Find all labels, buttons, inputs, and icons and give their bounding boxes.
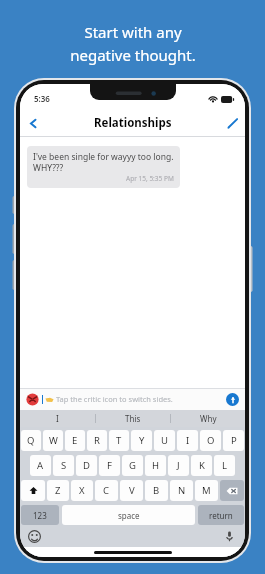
staticText: X xyxy=(79,484,85,497)
staticText: W xyxy=(49,434,58,447)
button[interactable]: C xyxy=(95,480,118,501)
staticText: C xyxy=(103,484,110,497)
button[interactable]: Shift xyxy=(21,480,45,501)
staticText: G xyxy=(129,459,136,472)
staticText: 5:36 xyxy=(34,93,50,104)
button[interactable]: return xyxy=(198,505,244,525)
button[interactable]: U xyxy=(154,430,175,451)
button[interactable]: Emoji xyxy=(28,530,41,543)
button[interactable]: X xyxy=(71,480,93,501)
staticText: F xyxy=(107,459,112,472)
staticText: V xyxy=(129,484,135,497)
staticText: H xyxy=(152,459,160,472)
staticText: O xyxy=(207,434,215,447)
staticText: I've been single for wayyy too long. WHY… xyxy=(33,151,174,173)
button[interactable]: This xyxy=(96,410,170,427)
button[interactable]: Z xyxy=(47,480,69,501)
button[interactable]: E xyxy=(65,430,85,451)
button[interactable]: G xyxy=(122,455,143,476)
button[interactable]: W xyxy=(43,430,63,451)
button[interactable]: Compose xyxy=(219,110,245,136)
button[interactable]: S xyxy=(53,455,74,476)
button[interactable]: L xyxy=(214,455,235,476)
button[interactable]: Back xyxy=(20,110,46,136)
button[interactable]: Y xyxy=(131,430,152,451)
button[interactable]: P xyxy=(223,430,244,451)
button[interactable]: T xyxy=(109,430,129,451)
button[interactable]: H xyxy=(145,455,166,476)
staticText: Start with any xyxy=(84,22,182,42)
button[interactable]: B xyxy=(145,480,168,501)
staticText: N xyxy=(178,484,186,497)
button[interactable]: 123 xyxy=(21,505,59,525)
staticText: negative thought. xyxy=(70,45,196,65)
staticText: 123 xyxy=(33,510,47,521)
staticText: Apr 15, 5:35 PM xyxy=(126,174,174,183)
button[interactable]: K xyxy=(191,455,212,476)
button[interactable]: Backspace xyxy=(220,480,244,501)
button[interactable]: I've been single for wayyy too long. WHY… xyxy=(27,146,180,188)
staticText: E xyxy=(72,434,78,447)
button[interactable]: Dictation xyxy=(223,530,236,543)
button[interactable]: I xyxy=(177,430,198,451)
button[interactable]: V xyxy=(120,480,143,501)
button[interactable]: D xyxy=(76,455,97,476)
staticText: D xyxy=(83,459,90,472)
staticText: P xyxy=(231,434,237,447)
button[interactable]: I xyxy=(20,410,95,427)
button[interactable]: O xyxy=(200,430,221,451)
button[interactable]: Send xyxy=(226,393,239,406)
staticText: K xyxy=(199,459,205,472)
staticText: return xyxy=(209,510,233,521)
staticText: I xyxy=(186,434,190,447)
button[interactable]: R xyxy=(87,430,107,451)
staticText: S xyxy=(61,459,67,472)
staticText: space xyxy=(118,510,140,521)
staticText: Y xyxy=(139,434,145,447)
staticText: L xyxy=(222,459,227,472)
button[interactable]: Q xyxy=(21,430,41,451)
staticText: J xyxy=(177,459,180,472)
staticText: I xyxy=(56,413,59,424)
staticText: Z xyxy=(55,484,61,497)
staticText: R xyxy=(94,434,100,447)
staticText: Why xyxy=(200,413,217,424)
button[interactable]: space xyxy=(62,505,195,525)
staticText: B xyxy=(153,484,160,497)
button[interactable]: Why xyxy=(171,410,245,427)
staticText: M xyxy=(202,484,211,497)
staticText: Q xyxy=(27,434,35,447)
button[interactable]: A xyxy=(30,455,51,476)
button[interactable]: M xyxy=(195,480,218,501)
staticText: Tap the critic icon to switch sides. xyxy=(56,394,173,404)
button[interactable]: Critic icon xyxy=(26,393,39,406)
staticText: U xyxy=(161,434,168,447)
staticText: A xyxy=(37,459,44,472)
staticText: Relationships xyxy=(94,115,172,131)
button[interactable]: F xyxy=(99,455,120,476)
button[interactable]: N xyxy=(170,480,193,501)
staticText: This xyxy=(125,413,141,424)
staticText: T xyxy=(116,434,122,447)
button[interactable]: J xyxy=(168,455,189,476)
